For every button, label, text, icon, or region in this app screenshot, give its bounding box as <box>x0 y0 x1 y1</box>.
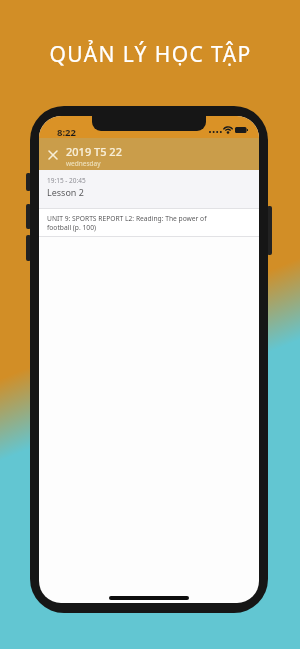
staticText: 8:22 <box>57 126 76 139</box>
staticText: 2019 T5 22 <box>66 144 122 159</box>
staticText: 19:15 - 20:45 <box>47 176 86 185</box>
staticText: Lesson 2 <box>47 186 84 198</box>
button[interactable]: UNIT 9: SPORTS REPORT L2: Reading: The p… <box>39 209 259 236</box>
staticText: wednesday <box>66 159 101 168</box>
button[interactable]: 2019 T5 22 <box>39 138 259 170</box>
staticText: QUẢN LÝ HỌC TẬP <box>49 40 252 69</box>
staticText: UNIT 9: SPORTS REPORT L2: Reading: The p… <box>47 214 207 232</box>
